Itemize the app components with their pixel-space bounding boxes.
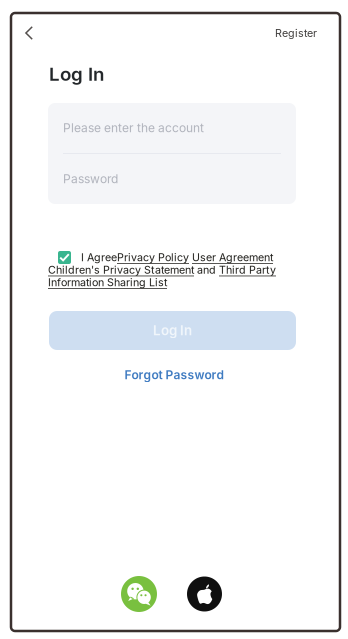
staticText: Log In <box>49 63 104 85</box>
staticText: Log In <box>153 323 192 338</box>
button[interactable]: Sign in with Apple <box>187 576 222 611</box>
button[interactable]: Sign in with WeChat <box>121 576 157 612</box>
button[interactable]: Agree to terms <box>58 251 71 264</box>
staticText: Password <box>63 172 118 186</box>
button[interactable]: Forgot Password <box>114 364 234 386</box>
staticText: Forgot Password <box>124 368 223 382</box>
button[interactable]: Log In <box>49 311 296 350</box>
staticText: Please enter the account <box>63 121 204 135</box>
staticText: Register <box>275 27 317 39</box>
staticText: I AgreePrivacy Policy User Agreement Chi… <box>48 251 276 289</box>
button[interactable]: Back <box>14 18 44 48</box>
button[interactable]: Register <box>266 18 326 48</box>
